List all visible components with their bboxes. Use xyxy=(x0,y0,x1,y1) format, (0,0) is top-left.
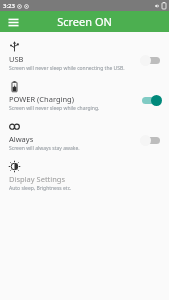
button[interactable]: USB xyxy=(0,38,169,78)
button[interactable]: Always xyxy=(0,118,169,158)
staticText: Always xyxy=(9,134,34,144)
staticText: POWER (Charging) xyxy=(9,94,74,104)
button[interactable]: Toggle off xyxy=(140,134,162,147)
staticText: Auto sleep, Brightness etc. xyxy=(9,185,72,192)
staticText: Screen ON xyxy=(57,14,112,29)
staticText: Screen will never sleep while connecting… xyxy=(9,65,125,72)
button[interactable]: POWER (Charging) xyxy=(0,78,169,118)
button[interactable]: Toggle on xyxy=(140,94,162,107)
staticText: 3:23 xyxy=(3,2,15,10)
staticText: Screen will always stay awake. xyxy=(9,145,80,152)
button[interactable]: Toggle off xyxy=(140,54,162,67)
button[interactable]: Display Settings xyxy=(0,158,169,198)
button[interactable]: Open navigation menu xyxy=(5,14,21,30)
staticText: USB xyxy=(9,54,24,64)
staticText: Screen will never sleep while charging. xyxy=(9,105,100,112)
staticText: Display Settings xyxy=(9,174,66,184)
